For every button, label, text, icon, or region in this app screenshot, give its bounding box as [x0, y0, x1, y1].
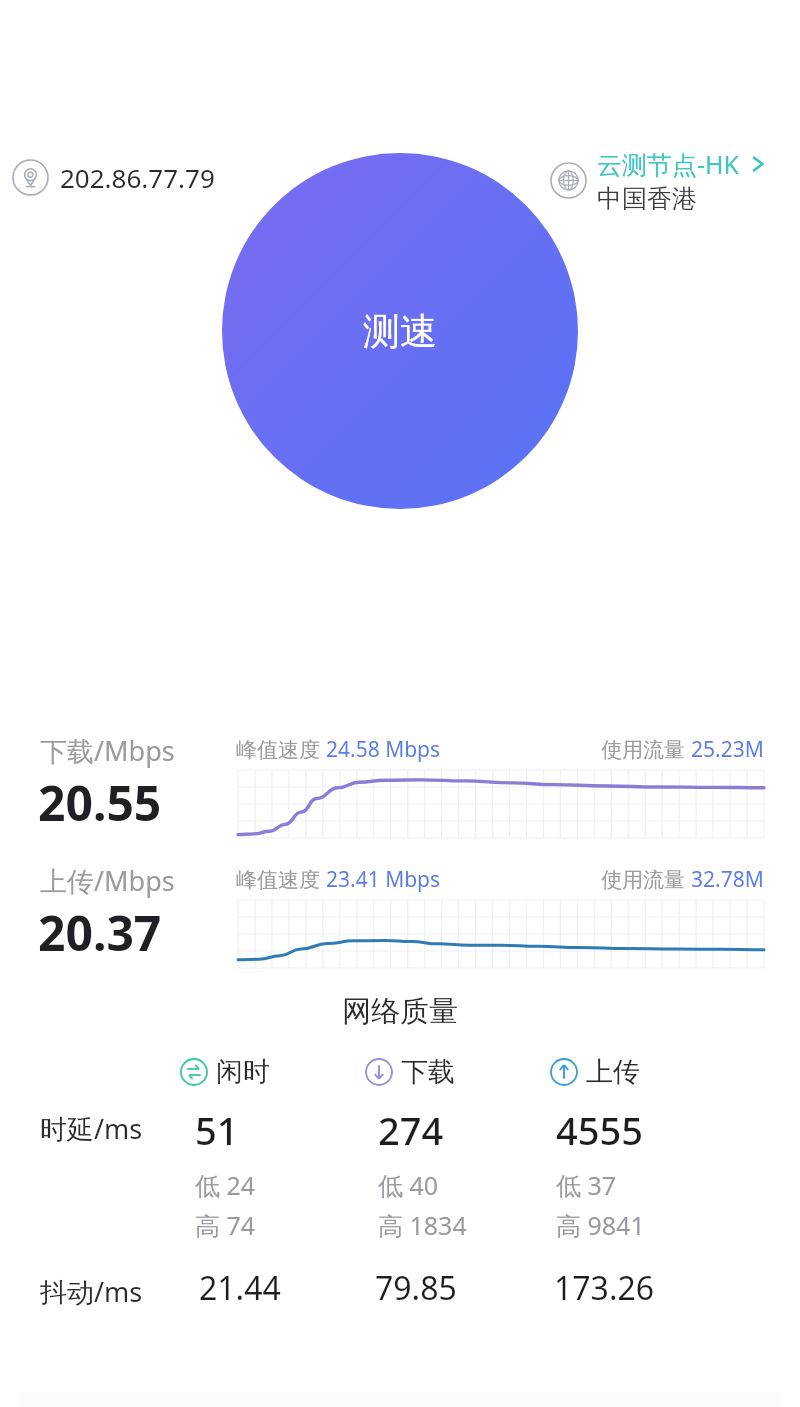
staticText: 20.37: [38, 900, 162, 965]
staticText: 23.41 Mbps: [326, 865, 441, 894]
staticText: 使用流量: [601, 865, 691, 894]
staticText: 抖动/ms: [40, 1273, 143, 1310]
staticText: 使用流量: [601, 735, 691, 764]
staticText: 21.44: [199, 1266, 281, 1310]
staticText: 20.55: [38, 770, 162, 835]
staticText: 上传/Mbps: [40, 862, 175, 899]
staticText: 峰值速度: [236, 865, 326, 894]
staticText: 79.85: [375, 1266, 457, 1310]
staticText: 173.26: [554, 1266, 655, 1310]
staticText: 4555: [556, 1104, 643, 1156]
other: Location: [12, 159, 49, 196]
staticText: 峰值速度: [236, 735, 326, 764]
staticText: 32.78M: [691, 865, 764, 894]
staticText: 51: [195, 1104, 239, 1156]
staticText: 高 74: [195, 1208, 256, 1242]
staticText: 下载: [401, 1055, 455, 1089]
button[interactable]: 测速: [222, 153, 578, 509]
staticText: 高 9841: [556, 1208, 645, 1242]
button[interactable]: 下载: [365, 1055, 455, 1089]
staticText: 274: [378, 1104, 444, 1156]
button[interactable]: 闲时: [180, 1055, 270, 1089]
staticText: 时延/ms: [40, 1110, 143, 1147]
staticText: 中国香港: [597, 183, 697, 214]
other: Node: [550, 162, 587, 199]
staticText: 下载/Mbps: [40, 732, 175, 769]
button[interactable]: Location: [8, 155, 219, 200]
staticText: 24.58 Mbps: [326, 735, 441, 764]
staticText: 低 40: [378, 1168, 439, 1202]
staticText: 测速: [363, 308, 437, 355]
staticText: 网络质量: [342, 993, 458, 1030]
staticText: 上传: [586, 1055, 640, 1089]
button[interactable]: Node: [546, 143, 772, 218]
button[interactable]: 上传: [550, 1055, 640, 1089]
staticText: 闲时: [216, 1055, 270, 1089]
staticText: 高 1834: [378, 1208, 467, 1242]
staticText: 202.86.77.79: [60, 160, 215, 195]
staticText: 低 37: [556, 1168, 617, 1202]
staticText: 云测节点-HK: [597, 147, 740, 181]
staticText: 25.23M: [691, 735, 764, 764]
staticText: 低 24: [195, 1168, 256, 1202]
